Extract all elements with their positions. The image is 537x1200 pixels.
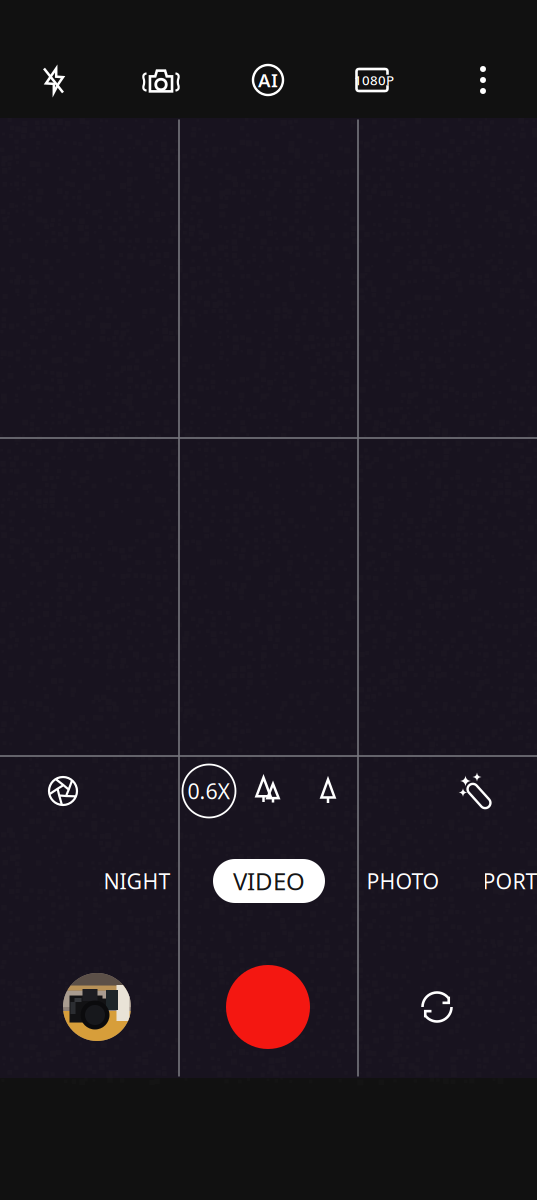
button[interactable]: NIGHT xyxy=(103,859,170,903)
staticText: 1080P xyxy=(354,71,394,89)
button[interactable]: 0.6X xyxy=(182,764,235,817)
button[interactable]: Aperture xyxy=(43,771,83,811)
button[interactable]: Gallery xyxy=(63,973,131,1041)
button[interactable]: Ultra wide xyxy=(248,771,288,811)
button[interactable]: More options xyxy=(463,60,503,100)
staticText: 0.6X xyxy=(187,777,230,805)
button[interactable]: Record xyxy=(226,965,310,1049)
button[interactable]: Filters xyxy=(453,769,495,811)
button[interactable]: Resolution 1080P xyxy=(352,60,398,100)
button[interactable]: VIDEO xyxy=(213,859,325,903)
staticText: PORTRAIT xyxy=(482,867,537,895)
button[interactable]: AI mode xyxy=(248,60,288,100)
staticText: NIGHT xyxy=(103,867,170,895)
button[interactable]: Wide xyxy=(308,771,348,811)
button[interactable]: Stabilization xyxy=(138,61,184,101)
staticText: VIDEO xyxy=(233,865,305,897)
button[interactable]: Flash off xyxy=(33,60,73,100)
staticText: AI xyxy=(258,68,278,92)
staticText: PHOTO xyxy=(366,867,439,895)
button[interactable]: Switch camera xyxy=(414,984,460,1030)
button[interactable]: PORTRAIT xyxy=(482,859,537,903)
button[interactable]: PHOTO xyxy=(366,859,439,903)
